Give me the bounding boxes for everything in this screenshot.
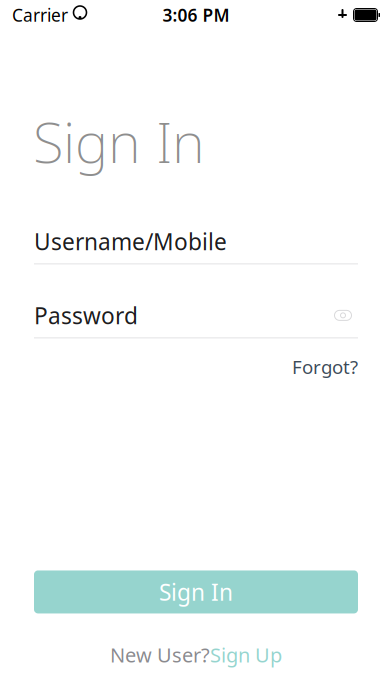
staticText: Forgot? [292, 354, 358, 379]
button[interactable]: Forgot? [292, 350, 358, 383]
staticText: Password [34, 300, 138, 330]
button[interactable]: Show password [328, 303, 358, 327]
staticText: Username/Mobile [34, 226, 227, 256]
staticText: Sign In [159, 577, 233, 607]
button[interactable]: New User? [110, 635, 282, 674]
staticText: New User? [110, 641, 210, 668]
button[interactable]: Sign In [34, 570, 358, 613]
staticText: 3:06 PM [162, 3, 229, 26]
staticText: Sign In [33, 104, 205, 178]
staticText: Sign Up [210, 641, 282, 668]
staticText: Carrier [12, 3, 68, 26]
